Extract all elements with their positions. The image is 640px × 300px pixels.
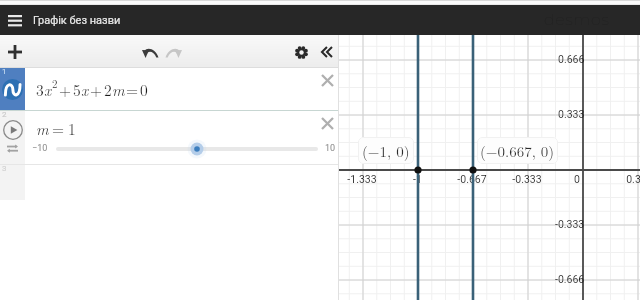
- button[interactable]: Settings: [289, 40, 313, 64]
- button[interactable]: Delete: [316, 112, 338, 134]
- staticText: 5: [73, 79, 81, 101]
- button[interactable]: 3: [0, 165, 339, 200]
- staticText: m: [112, 79, 125, 101]
- staticText: -1.333: [347, 173, 377, 185]
- staticText: -1: [413, 173, 422, 185]
- staticText: 3: [2, 164, 7, 173]
- staticText: 0: [574, 173, 580, 185]
- staticText: 2: [2, 110, 7, 119]
- staticText: +: [90, 79, 103, 101]
- button[interactable]: Collapse panel: [313, 40, 337, 64]
- staticText: -0.666: [555, 273, 585, 285]
- staticText: x: [81, 79, 89, 101]
- staticText: 0.333: [558, 108, 585, 120]
- staticText: Графік без назви: [33, 14, 121, 27]
- staticText: (−0.667, 0): [480, 140, 555, 161]
- staticText: 2: [52, 76, 58, 92]
- staticText: m: [36, 118, 49, 140]
- staticText: 2: [104, 79, 112, 101]
- staticText: 0: [140, 79, 148, 101]
- button[interactable]: 2: [0, 111, 339, 165]
- staticText: 10: [325, 143, 336, 154]
- button[interactable]: Add expression: [0, 37, 30, 67]
- staticText: -0.333: [512, 173, 542, 185]
- staticText: +: [59, 79, 72, 101]
- staticText: x: [44, 79, 52, 101]
- staticText: -0.667: [457, 173, 487, 185]
- staticText: (−1, 0): [362, 140, 410, 161]
- staticText: =: [52, 118, 65, 140]
- staticText: −10: [32, 143, 48, 154]
- button[interactable]: Redo: [161, 40, 185, 64]
- staticText: =: [126, 79, 139, 101]
- staticText: 1: [2, 67, 7, 76]
- staticText: 1: [68, 118, 76, 140]
- staticText: 0.666: [558, 53, 585, 65]
- staticText: 0.3: [626, 173, 640, 185]
- button[interactable]: 1: [0, 68, 339, 111]
- staticText: 3: [36, 79, 44, 101]
- button[interactable]: Undo: [138, 40, 162, 64]
- staticText: -0.333: [555, 218, 585, 230]
- button[interactable]: Delete: [316, 69, 338, 91]
- button[interactable]: Menu: [0, 5, 30, 35]
